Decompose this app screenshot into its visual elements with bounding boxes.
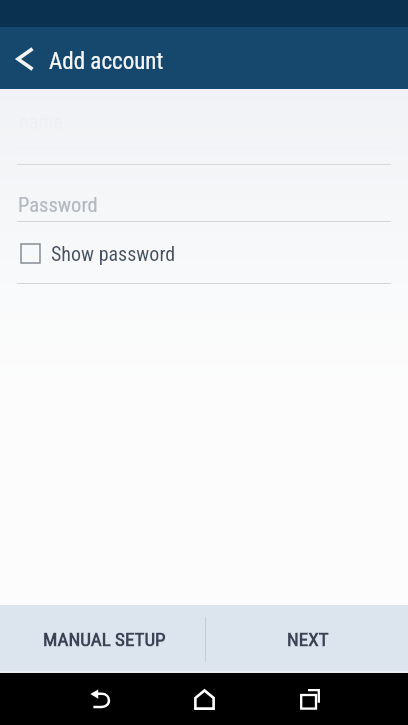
button[interactable]: Home [178, 673, 230, 725]
staticText: Show password [51, 242, 176, 265]
button[interactable]: Back [0, 27, 50, 89]
staticText: Password [18, 193, 98, 217]
button[interactable]: MANUAL SETUP [0, 605, 204, 673]
staticText: MANUAL SETUP [43, 628, 166, 650]
button[interactable]: Show password [0, 236, 408, 271]
button[interactable]: Recent apps [284, 673, 336, 725]
button[interactable]: Back [74, 673, 126, 725]
button[interactable]: NEXT [204, 605, 408, 673]
staticText: Add account [49, 48, 164, 75]
staticText: NEXT [287, 628, 329, 650]
